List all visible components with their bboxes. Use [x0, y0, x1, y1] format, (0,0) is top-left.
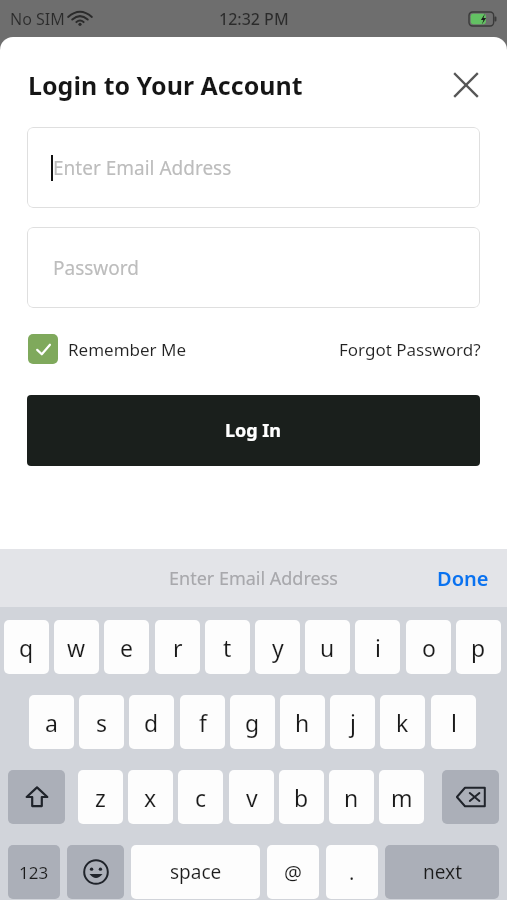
staticText: Password	[53, 255, 139, 281]
staticText: o	[422, 632, 436, 663]
button[interactable]: @	[267, 845, 319, 899]
button[interactable]: Close	[445, 64, 487, 106]
button[interactable]: l	[431, 695, 476, 749]
staticText: c	[195, 782, 207, 813]
staticText: l	[451, 707, 457, 738]
staticText: x	[144, 782, 157, 813]
button[interactable]: backspace	[442, 770, 499, 824]
staticText: m	[391, 782, 413, 813]
staticText: Remember Me	[68, 338, 187, 361]
staticText: next	[423, 859, 462, 885]
staticText: Forgot Password?	[339, 338, 481, 361]
button[interactable]: .	[326, 845, 378, 899]
button[interactable]: q	[4, 620, 49, 674]
staticText: t	[223, 632, 232, 663]
staticText: 12:32 PM	[219, 8, 289, 30]
button[interactable]: b	[279, 770, 324, 824]
staticText: f	[199, 707, 207, 738]
staticText: Login to Your Account	[28, 68, 303, 102]
button[interactable]: n	[329, 770, 374, 824]
staticText: q	[19, 632, 34, 663]
button[interactable]: shift	[8, 770, 65, 824]
staticText: i	[375, 632, 381, 663]
button[interactable]: Done	[437, 565, 489, 592]
button[interactable]: w	[54, 620, 99, 674]
staticText: Enter Email Address	[169, 566, 338, 591]
staticText: z	[95, 782, 106, 813]
button[interactable]: o	[406, 620, 451, 674]
button[interactable]: j	[330, 695, 375, 749]
button[interactable]: s	[79, 695, 124, 749]
button[interactable]: g	[230, 695, 275, 749]
staticText: 123	[19, 861, 49, 884]
staticText: p	[471, 632, 486, 663]
staticText: space	[170, 859, 222, 885]
button[interactable]: a	[29, 695, 74, 749]
staticText: Enter Email Address	[53, 155, 232, 181]
button[interactable]: z	[78, 770, 123, 824]
button[interactable]: Remember Me	[28, 334, 187, 364]
button[interactable]: space	[131, 845, 260, 899]
button[interactable]: u	[305, 620, 350, 674]
button[interactable]: v	[229, 770, 274, 824]
button[interactable]: e	[104, 620, 149, 674]
staticText: s	[96, 707, 108, 738]
staticText: b	[294, 782, 309, 813]
staticText: Done	[437, 565, 489, 592]
button[interactable]: next	[385, 845, 499, 899]
staticText: w	[67, 632, 86, 663]
button[interactable]: emoji	[67, 845, 124, 899]
button[interactable]: h	[280, 695, 325, 749]
button[interactable]: Enter Email Address	[27, 127, 480, 208]
button[interactable]: p	[456, 620, 501, 674]
staticText: a	[45, 707, 58, 738]
button[interactable]: Log In	[27, 395, 480, 466]
staticText: u	[320, 632, 335, 663]
button[interactable]: 123	[8, 845, 60, 899]
button[interactable]: d	[129, 695, 174, 749]
button[interactable]: Password	[27, 227, 480, 308]
staticText: No SIM	[10, 8, 65, 30]
staticText: r	[173, 632, 183, 663]
staticText: d	[144, 707, 159, 738]
staticText: e	[120, 632, 133, 663]
staticText: y	[272, 632, 284, 663]
staticText: j	[350, 707, 356, 738]
staticText: v	[246, 782, 258, 813]
staticText: @	[284, 859, 302, 886]
button[interactable]: t	[205, 620, 250, 674]
button[interactable]: k	[380, 695, 425, 749]
button[interactable]: f	[180, 695, 225, 749]
staticText: h	[295, 707, 310, 738]
button[interactable]: m	[379, 770, 424, 824]
button[interactable]: y	[255, 620, 300, 674]
button[interactable]: i	[355, 620, 400, 674]
button[interactable]: c	[178, 770, 223, 824]
staticText: k	[396, 707, 409, 738]
button[interactable]: x	[128, 770, 173, 824]
button[interactable]: Forgot Password?	[339, 338, 481, 361]
staticText: Log In	[225, 418, 282, 443]
staticText: g	[245, 707, 260, 738]
button[interactable]: r	[155, 620, 200, 674]
staticText: n	[344, 782, 359, 813]
staticText: .	[349, 859, 355, 886]
